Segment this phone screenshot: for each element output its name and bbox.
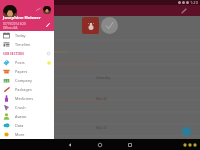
- staticText: 07/19/2014 8:20: [3, 22, 26, 26]
- button[interactable]: Medicines: [0, 94, 54, 103]
- staticText: Avatar: [15, 114, 27, 119]
- button[interactable]: Done: [101, 17, 118, 34]
- staticText: Company: [15, 78, 32, 83]
- staticText: 1:20: [190, 0, 198, 5]
- button[interactable]: Edit profile: [45, 22, 51, 28]
- staticText: Timeline: [15, 42, 31, 47]
- staticText: Saturday: [96, 76, 111, 80]
- button[interactable]: Back: [63, 139, 77, 150]
- staticText: Medicines: [15, 96, 34, 101]
- button[interactable]: Add entry: [82, 17, 99, 34]
- button[interactable]: Crush: [0, 103, 54, 112]
- button[interactable]: Company: [0, 76, 54, 85]
- staticText: Mar 26: [96, 97, 107, 101]
- button[interactable]: Today: [0, 31, 54, 40]
- button[interactable]: More: [0, 130, 54, 139]
- button[interactable]: Posts: [0, 58, 54, 67]
- staticText: Mar 27: [96, 126, 107, 130]
- button[interactable]: Edit: [180, 7, 188, 15]
- button[interactable]: Switch account: [43, 6, 51, 14]
- staticText: Posts: [15, 60, 25, 65]
- button[interactable]: Timeline: [0, 40, 54, 49]
- button[interactable]: Home: [93, 139, 107, 150]
- staticText: Today: [15, 33, 26, 38]
- staticText: SUB SECTION: [3, 52, 24, 56]
- staticText: Papers: [15, 69, 28, 74]
- button[interactable]: Packages: [0, 85, 54, 94]
- button[interactable]: Data: [0, 121, 54, 130]
- staticText: Data: [15, 123, 24, 128]
- staticText: Crush: [15, 105, 26, 110]
- staticText: More: [15, 132, 25, 137]
- button[interactable]: Add event: [182, 127, 191, 136]
- staticText: Josephine Heisner: [3, 15, 41, 21]
- button[interactable]: Profile photo: [3, 5, 17, 19]
- staticText: Packages: [15, 87, 32, 92]
- button[interactable]: Recents: [123, 139, 137, 150]
- button[interactable]: Avatar: [0, 112, 54, 121]
- staticText: Offices.BA: [3, 26, 18, 30]
- button[interactable]: Papers: [0, 67, 54, 76]
